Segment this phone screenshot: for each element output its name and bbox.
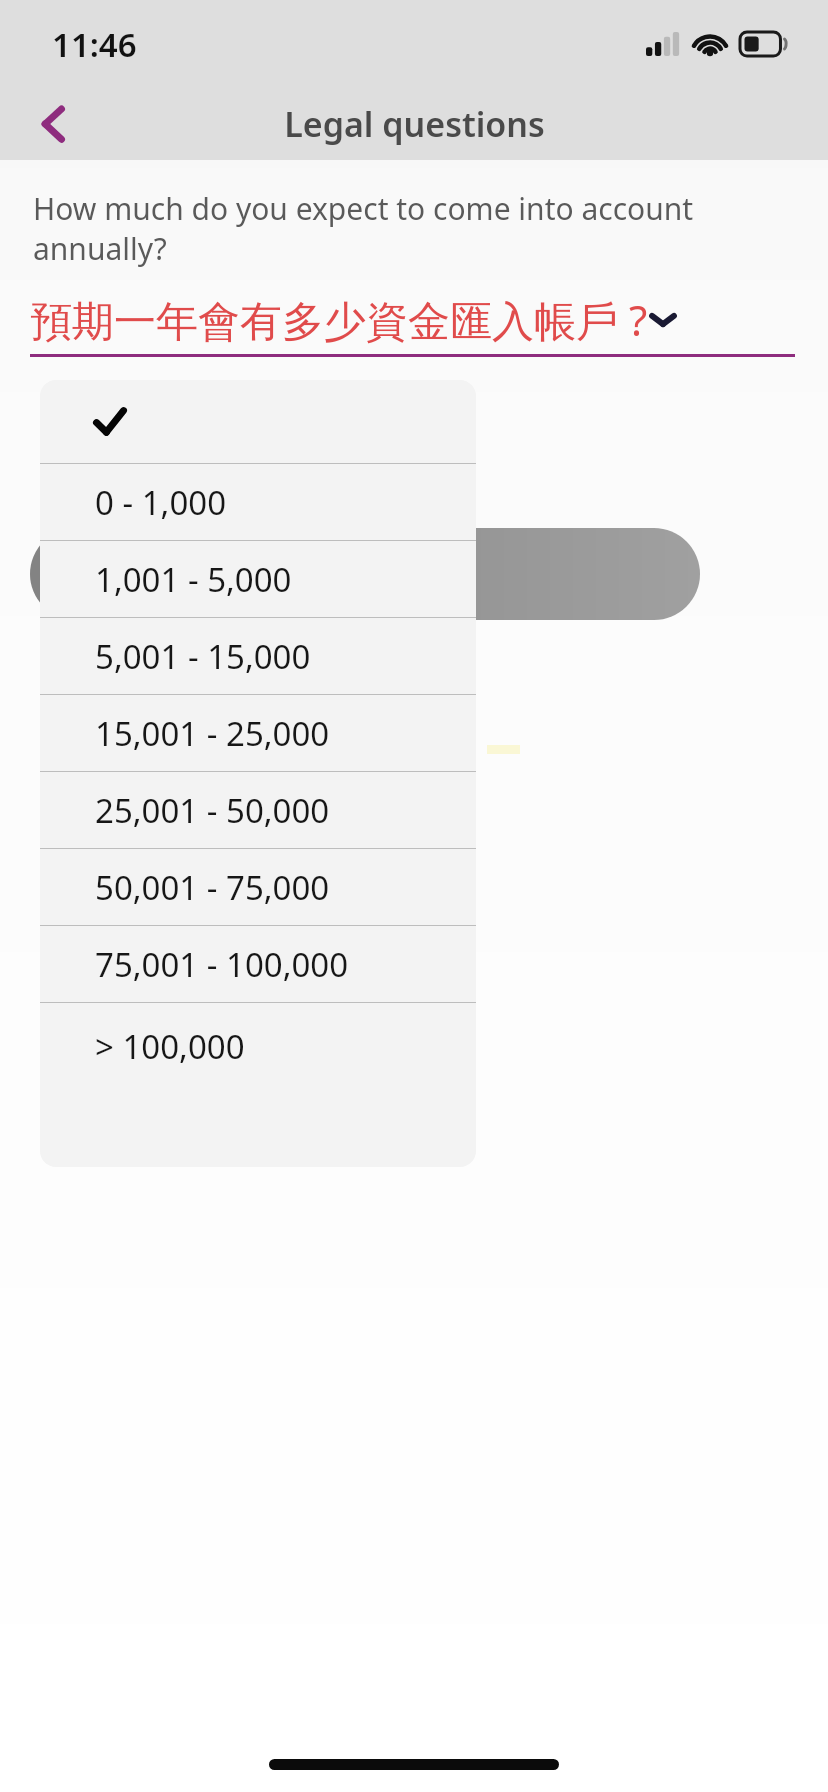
button[interactable]: Back	[18, 88, 90, 160]
staticText: 5,001 - 15,000	[95, 634, 311, 679]
staticText: 1,001 - 5,000	[95, 557, 292, 602]
button[interactable]: 0 - 1,000	[40, 464, 476, 540]
button[interactable]: Continue	[30, 528, 700, 620]
button[interactable]: 預期一年會有多少資金匯入帳戶 ?	[30, 291, 795, 348]
staticText: 0 - 1,000	[95, 480, 227, 525]
staticText: How much do you expect to come into acco…	[33, 188, 694, 269]
button[interactable]: > 100,000	[40, 1003, 476, 1090]
button[interactable]: 15,001 - 25,000	[40, 695, 476, 771]
staticText: > 100,000	[95, 1024, 245, 1069]
button[interactable]: 75,001 - 100,000	[40, 926, 476, 1002]
button[interactable]: 50,001 - 75,000	[40, 849, 476, 925]
staticText: 預期一年會有多少資金匯入帳戶 ?	[30, 291, 648, 348]
button[interactable]: 5,001 - 15,000	[40, 618, 476, 694]
button[interactable]: Selected, none	[40, 380, 476, 463]
staticText: 15,001 - 25,000	[95, 711, 330, 756]
button[interactable]: 1,001 - 5,000	[40, 541, 476, 617]
staticText: Legal questions	[284, 101, 545, 147]
button[interactable]: 25,001 - 50,000	[40, 772, 476, 848]
staticText: 25,001 - 50,000	[95, 788, 330, 833]
staticText: 11:46	[52, 22, 137, 67]
staticText: 50,001 - 75,000	[95, 865, 330, 910]
staticText: 75,001 - 100,000	[95, 942, 349, 987]
